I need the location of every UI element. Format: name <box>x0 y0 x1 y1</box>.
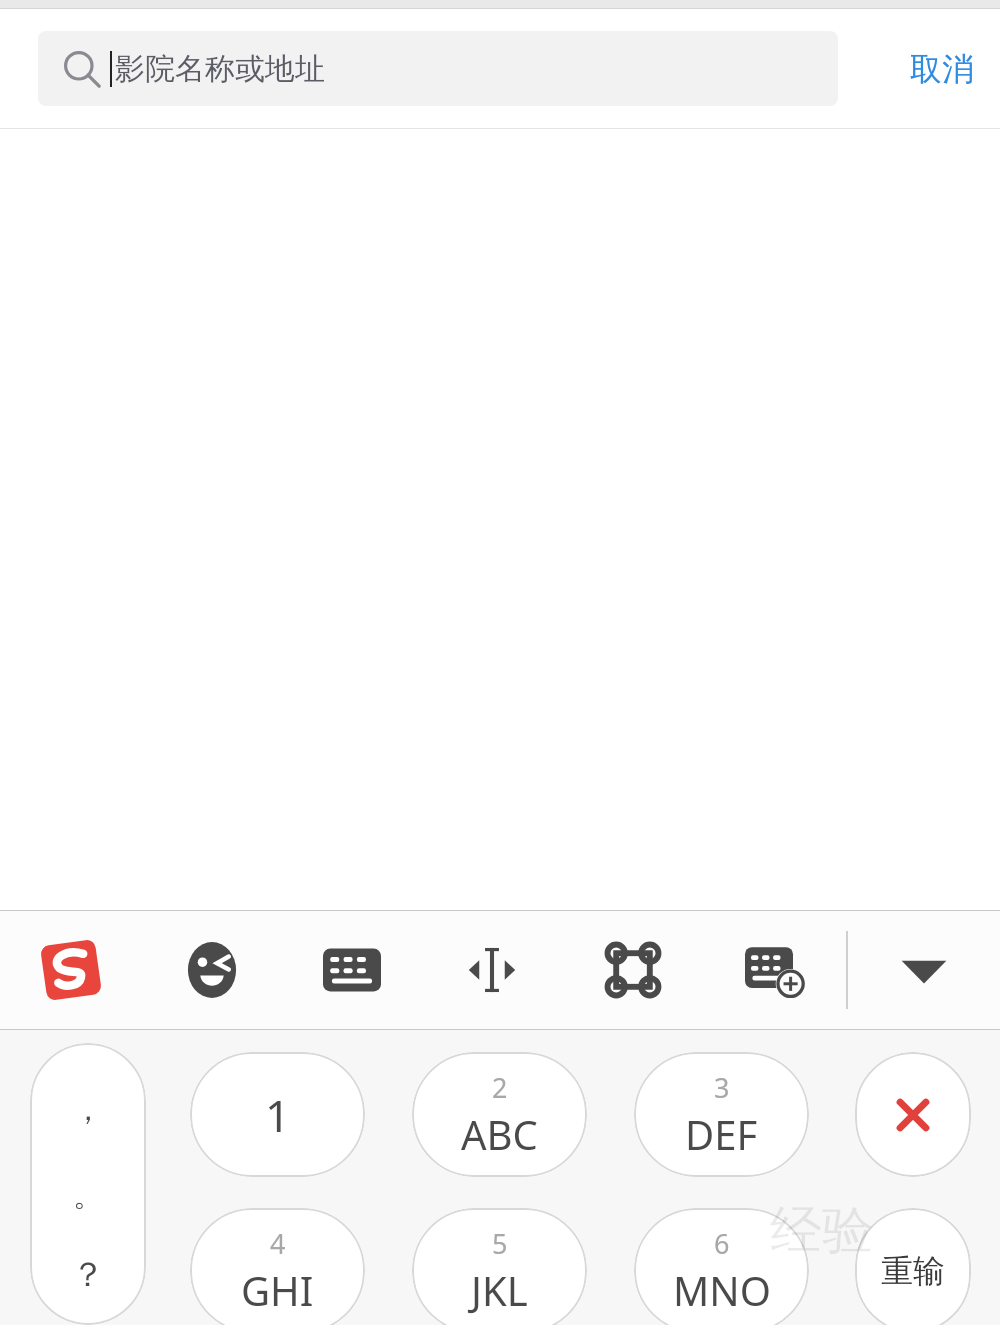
button[interactable]: Move cursor <box>422 911 562 1029</box>
staticText: JKL <box>471 1263 528 1317</box>
staticText: 3 <box>714 1069 730 1106</box>
button[interactable]: 6 <box>634 1208 809 1325</box>
button[interactable]: Keyboard layout <box>282 911 422 1029</box>
button[interactable]: 1 <box>190 1052 365 1177</box>
staticText: 。 <box>73 1177 103 1215</box>
staticText: 重输 <box>881 1251 945 1291</box>
staticText: DEF <box>685 1107 758 1161</box>
staticText: 影院名称或地址 <box>115 50 325 88</box>
button[interactable]: 取消 <box>910 49 974 89</box>
button[interactable]: 影院名称或地址 <box>38 31 838 106</box>
staticText: 经验 <box>770 1198 874 1264</box>
button[interactable]: 2 <box>412 1052 587 1177</box>
button[interactable]: 5 <box>412 1208 587 1325</box>
staticText: GHI <box>241 1263 314 1317</box>
button[interactable]: 重输 <box>855 1208 971 1325</box>
button[interactable]: 3 <box>634 1052 809 1177</box>
button[interactable]: Delete <box>855 1052 971 1177</box>
button[interactable]: Hide keyboard <box>848 911 1000 1029</box>
staticText: 2 <box>492 1069 508 1106</box>
button[interactable]: 4 <box>190 1208 365 1325</box>
staticText: 5 <box>492 1225 508 1262</box>
button[interactable]: Shortcuts <box>562 911 704 1029</box>
button[interactable]: ， <box>30 1043 146 1325</box>
staticText: MNO <box>673 1263 771 1317</box>
staticText: 取消 <box>910 49 974 89</box>
staticText: ABC <box>461 1107 538 1161</box>
staticText: ， <box>73 1091 103 1129</box>
button[interactable]: Sogou input method <box>0 911 142 1029</box>
staticText: 6 <box>714 1225 730 1262</box>
staticText: 1 <box>265 1085 291 1145</box>
button[interactable]: Emoji <box>142 911 282 1029</box>
staticText: ？ <box>71 1253 105 1296</box>
staticText: 4 <box>270 1225 286 1262</box>
button[interactable]: Floating keyboard <box>704 911 846 1029</box>
